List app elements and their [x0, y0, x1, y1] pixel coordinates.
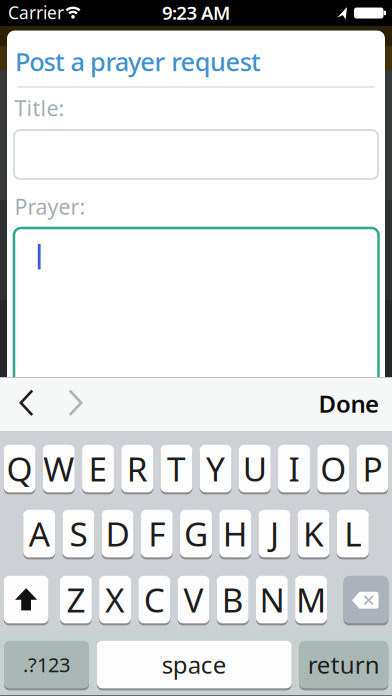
staticText: Title: [14, 94, 64, 122]
staticText: R [127, 446, 148, 491]
staticText: Prayer: [14, 192, 85, 221]
staticText: K [303, 511, 324, 556]
button[interactable]: G [180, 509, 212, 559]
button[interactable]: Next field [53, 381, 97, 425]
button[interactable]: Previous field [4, 381, 48, 425]
staticText: V [183, 577, 203, 622]
button[interactable]: Delete [344, 575, 388, 625]
button[interactable]: S [62, 509, 94, 559]
button[interactable]: D [102, 509, 134, 559]
staticText: C [144, 577, 165, 622]
button[interactable]: T [160, 444, 192, 494]
staticText: F [148, 511, 165, 556]
button[interactable]: F [141, 509, 173, 559]
button[interactable]: I [278, 444, 310, 494]
staticText: D [106, 511, 130, 556]
button[interactable]: Shift [4, 575, 48, 625]
staticText: E [88, 446, 107, 491]
staticText: S [69, 511, 87, 556]
staticText: G [184, 511, 208, 556]
staticText: M [296, 577, 326, 622]
button[interactable]: Prayer [14, 228, 378, 392]
button[interactable]: A [23, 509, 55, 559]
button[interactable]: N [256, 575, 288, 625]
button[interactable]: O [317, 444, 349, 494]
button[interactable]: E [82, 444, 114, 494]
button[interactable]: R [121, 444, 153, 494]
button[interactable]: B [217, 575, 249, 625]
button[interactable]: V [178, 575, 209, 625]
button[interactable]: Title [14, 130, 378, 179]
button[interactable]: Done [279, 388, 379, 419]
staticText: Z [66, 577, 85, 622]
staticText: J [270, 511, 279, 556]
staticText: T [167, 446, 186, 491]
staticText: Y [206, 446, 225, 491]
button[interactable]: Y [200, 444, 232, 494]
staticText: A [29, 511, 50, 556]
staticText: B [222, 577, 244, 622]
button[interactable]: space [97, 640, 292, 690]
staticText: L [344, 511, 361, 556]
button[interactable]: Z [60, 575, 92, 625]
button[interactable]: J [258, 509, 290, 559]
staticText: I [288, 446, 299, 491]
button[interactable]: Numbers [4, 640, 89, 690]
button[interactable]: U [239, 444, 271, 494]
staticText: N [259, 577, 284, 622]
staticText: space [162, 649, 227, 680]
staticText: 9:23 AM [162, 0, 230, 25]
staticText: .?123 [23, 651, 70, 678]
button[interactable]: K [298, 509, 330, 559]
button[interactable]: M [295, 575, 327, 625]
staticText: P [362, 446, 382, 491]
button[interactable]: P [356, 444, 388, 494]
staticText: return [308, 649, 380, 680]
button[interactable]: return [299, 640, 388, 690]
button[interactable]: X [99, 575, 131, 625]
staticText: W [43, 446, 74, 491]
staticText: Post a prayer request [15, 45, 261, 78]
staticText: Q [7, 446, 33, 491]
button[interactable]: H [219, 509, 251, 559]
staticText: U [243, 446, 267, 491]
staticText: Done [318, 388, 379, 419]
staticText: H [223, 511, 248, 556]
button[interactable]: L [337, 509, 369, 559]
button[interactable]: C [138, 575, 170, 625]
staticText: Carrier [8, 1, 64, 24]
staticText: O [320, 446, 346, 491]
button[interactable]: W [43, 444, 75, 494]
button[interactable]: Q [4, 444, 36, 494]
staticText: X [105, 577, 125, 622]
